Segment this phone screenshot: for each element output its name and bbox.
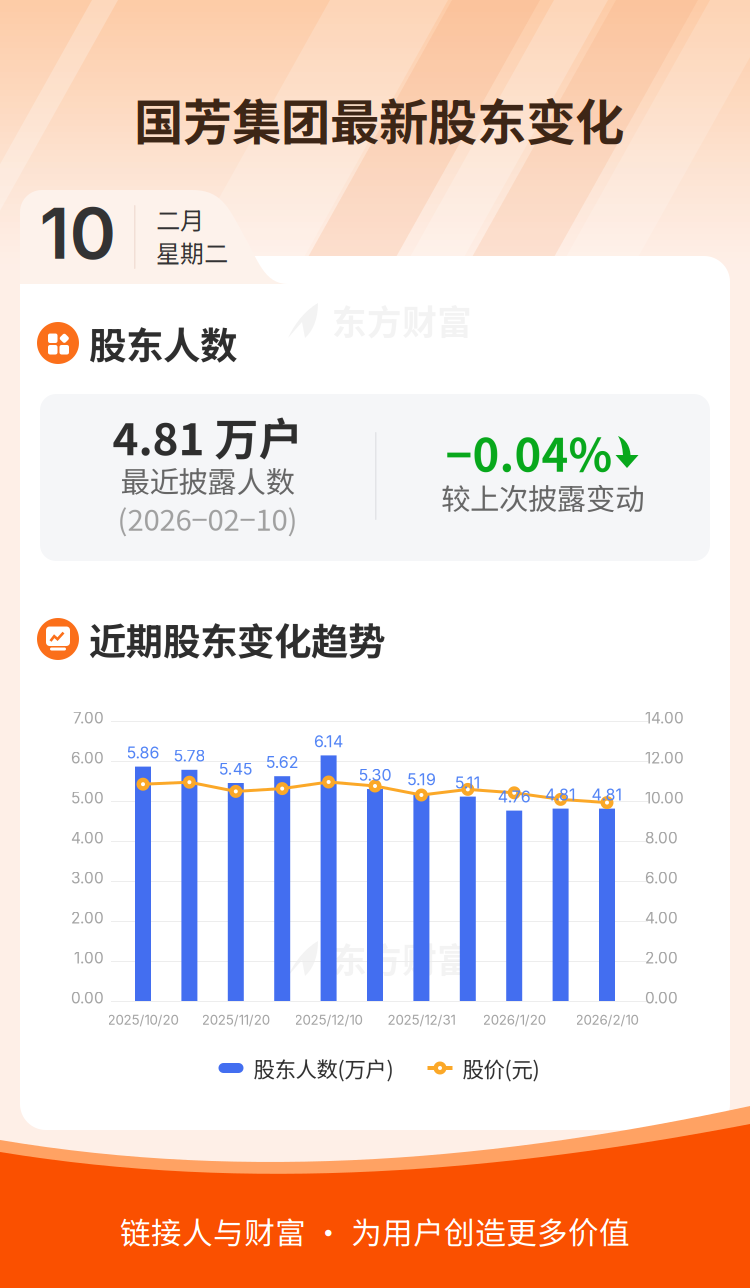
staticText: 4.81 xyxy=(545,785,576,804)
staticText: 5.45 xyxy=(219,759,253,779)
staticText: 2.00 xyxy=(645,949,678,967)
staticText: 7.00 xyxy=(73,709,104,727)
staticText: 股东人数(万户) xyxy=(253,1053,393,1083)
staticText: 2025/12/10 xyxy=(295,1012,363,1028)
staticText: (2026−02−10) xyxy=(117,497,297,539)
staticText: 5.62 xyxy=(266,752,299,772)
staticText: 10.00 xyxy=(645,789,684,807)
staticText: 近期股东变化趋势 xyxy=(89,612,385,666)
staticText: 14.00 xyxy=(645,709,684,727)
staticText: 二月 xyxy=(156,202,204,236)
staticText: 最近披露人数 xyxy=(120,459,294,501)
staticText: 0.00 xyxy=(645,989,678,1007)
staticText: 5.11 xyxy=(455,773,481,792)
staticText: 链接人与财富 · 为用户创造更多价值 xyxy=(120,1209,630,1253)
staticText: 星期二 xyxy=(156,235,228,269)
staticText: 6.00 xyxy=(71,749,104,767)
staticText: 0.00 xyxy=(71,989,104,1007)
staticText: 股价(元) xyxy=(462,1053,539,1083)
staticText: 2025/10/20 xyxy=(107,1012,178,1028)
staticText: 3.00 xyxy=(71,869,104,887)
staticText: 4.00 xyxy=(645,909,678,927)
staticText: 较上次披露变动 xyxy=(441,476,644,518)
staticText: 5.19 xyxy=(407,770,436,789)
staticText: 4.00 xyxy=(71,829,104,847)
staticText: 2025/12/31 xyxy=(387,1012,455,1028)
staticText: −0.04% xyxy=(445,419,612,485)
staticText: 6.14 xyxy=(314,732,343,751)
staticText: 2025/11/20 xyxy=(202,1012,270,1028)
staticText: 12.00 xyxy=(645,749,684,767)
staticText: 国芳集团最新股东变化 xyxy=(134,83,624,155)
staticText: 东方财富 xyxy=(332,295,472,345)
staticText: 4.81 xyxy=(591,785,622,804)
staticText: 2026/1/20 xyxy=(483,1012,546,1028)
staticText: 6.00 xyxy=(645,869,678,887)
staticText: 2026/2/10 xyxy=(575,1012,638,1028)
staticText: 5.86 xyxy=(126,743,159,762)
staticText: 5.30 xyxy=(358,765,391,785)
staticText: 5.00 xyxy=(71,789,104,807)
staticText: 股东人数 xyxy=(89,316,237,370)
staticText: 4.81 万户 xyxy=(112,404,302,468)
staticText: 8.00 xyxy=(645,829,678,847)
staticText: 10 xyxy=(39,190,116,276)
staticText: 东方财富 xyxy=(332,933,472,983)
staticText: 4.76 xyxy=(498,787,531,806)
staticText: 2.00 xyxy=(71,909,104,927)
staticText: 1.00 xyxy=(74,949,104,967)
staticText: 5.78 xyxy=(173,746,205,765)
